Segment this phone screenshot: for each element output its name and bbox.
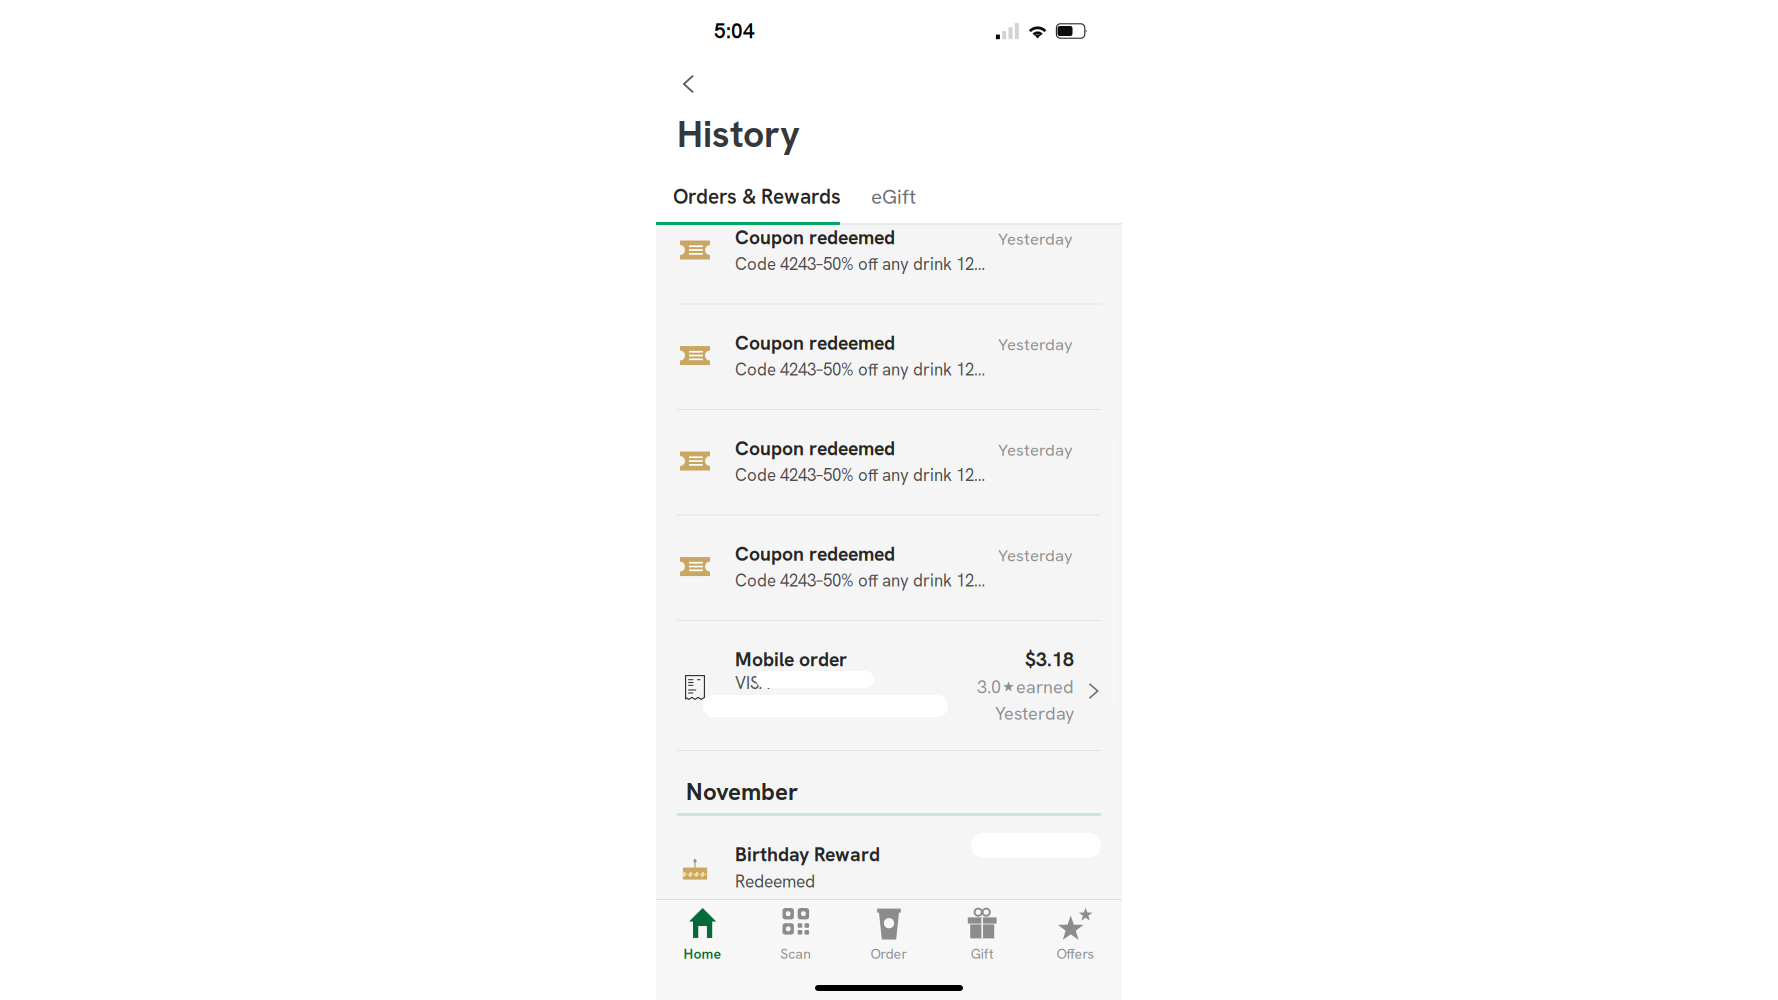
staticText: Yesterday: [998, 439, 1073, 461]
staticText: Code 4243–50% off any drink 12…: [735, 464, 985, 486]
button[interactable]: Birthday Reward: [656, 816, 1122, 900]
staticText: Code 4243–50% off any drink 12…: [735, 359, 985, 381]
button[interactable]: Coupon redeemed: [656, 410, 1122, 514]
staticText: VISA: [735, 672, 770, 694]
staticText: Orders & Rewards: [673, 183, 841, 210]
button[interactable]: Coupon redeemed: [656, 515, 1122, 620]
button[interactable]: Orders & Rewards: [656, 183, 855, 210]
staticText: Coupon redeemed: [735, 436, 895, 461]
staticText: eGift: [871, 183, 916, 210]
staticText: $3.18: [1025, 647, 1074, 672]
button[interactable]: Coupon redeemed: [656, 304, 1122, 409]
staticText: 3.0: [977, 675, 1001, 699]
staticText: Yesterday: [998, 545, 1073, 566]
staticText: Redeemed: [735, 870, 815, 893]
button[interactable]: Coupon redeemed: [656, 199, 1122, 303]
button[interactable]: Back: [656, 68, 713, 99]
staticText: Yesterday: [995, 702, 1074, 725]
staticText: November: [686, 776, 798, 807]
staticText: Yesterday: [998, 228, 1073, 250]
staticText: Coupon redeemed: [735, 330, 895, 356]
staticText: Coupon redeemed: [735, 541, 895, 567]
button[interactable]: eGift: [855, 183, 946, 210]
staticText: Coupon redeemed: [735, 225, 895, 250]
staticText: 5:04: [714, 17, 755, 44]
staticText: Offers: [1056, 945, 1094, 963]
staticText: earned: [1016, 675, 1074, 699]
staticText: Gift: [971, 945, 994, 963]
button[interactable]: Scan: [749, 900, 842, 963]
button[interactable]: Mobile order: [656, 621, 1122, 750]
staticText: Mobile order: [735, 647, 847, 672]
button[interactable]: Home: [656, 900, 749, 963]
staticText: Scan: [780, 945, 811, 963]
staticText: Order: [870, 945, 907, 963]
staticText: Code 4243–50% off any drink 12…: [735, 253, 985, 275]
staticText: History: [677, 110, 800, 158]
staticText: Home: [684, 945, 722, 963]
button[interactable]: Gift: [936, 900, 1029, 963]
button[interactable]: Offers: [1029, 900, 1122, 963]
button[interactable]: Order: [842, 900, 936, 963]
staticText: Code 4243–50% off any drink 12…: [735, 570, 985, 592]
staticText: Yesterday: [998, 334, 1073, 355]
staticText: Birthday Reward: [735, 842, 880, 867]
